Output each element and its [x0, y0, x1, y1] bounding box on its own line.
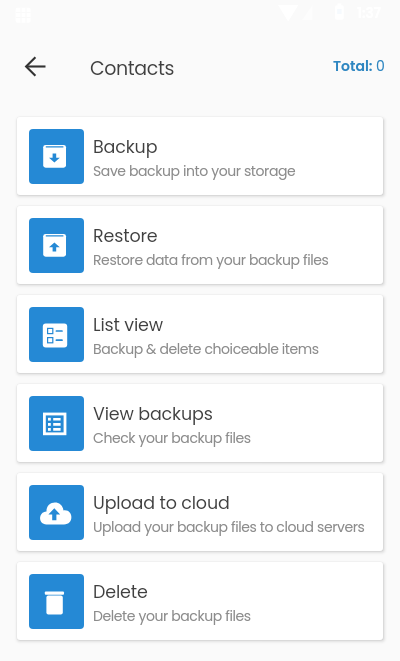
staticText: Upload your backup files to cloud server…: [93, 517, 365, 537]
staticText: Upload to cloud: [93, 491, 230, 516]
staticText: Delete your backup files: [93, 606, 251, 626]
staticText: Save backup into your storage: [93, 161, 296, 181]
staticText: Restore data from your backup files: [93, 250, 329, 270]
staticText: 0: [376, 56, 385, 76]
button[interactable]: Backup: [17, 117, 383, 195]
staticText: List view: [93, 313, 164, 338]
staticText: Backup: [93, 135, 158, 160]
staticText: View backups: [93, 402, 213, 427]
button[interactable]: Restore: [17, 206, 383, 284]
button[interactable]: Upload to cloud: [17, 473, 383, 551]
staticText: Restore: [93, 224, 158, 249]
button[interactable]: Total:: [333, 56, 385, 76]
staticText: Delete: [93, 580, 148, 605]
staticText: Check your backup files: [93, 428, 251, 448]
button[interactable]: View backups: [17, 384, 383, 462]
staticText: Backup & delete choiceable items: [93, 339, 319, 359]
staticText: Total:: [333, 56, 376, 76]
button[interactable]: List view: [17, 295, 383, 373]
button[interactable]: Delete: [17, 562, 383, 640]
button[interactable]: Back: [11, 42, 59, 90]
staticText: Contacts: [90, 55, 174, 82]
